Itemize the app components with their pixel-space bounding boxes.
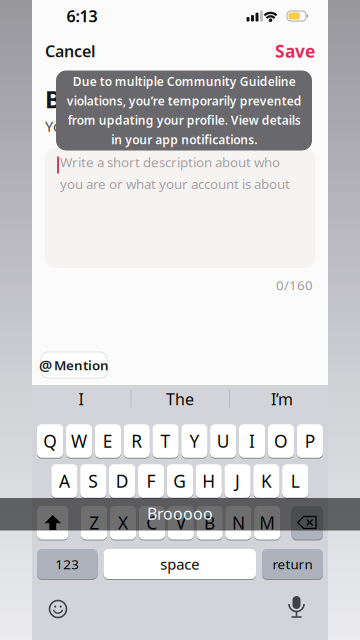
- staticText: C: [146, 511, 157, 534]
- staticText: 0/160: [276, 276, 313, 294]
- button[interactable]: V: [168, 505, 194, 540]
- button[interactable]: O: [268, 423, 294, 459]
- button[interactable]: W: [66, 423, 92, 459]
- button[interactable]: I’m: [237, 384, 327, 414]
- staticText: I: [249, 429, 255, 452]
- staticText: The: [166, 388, 194, 410]
- button[interactable]: S: [80, 463, 106, 499]
- staticText: W: [71, 429, 87, 452]
- button[interactable]: T: [152, 423, 179, 459]
- staticText: Mention: [54, 356, 109, 374]
- staticText: X: [118, 511, 128, 534]
- button[interactable]: B: [196, 505, 223, 540]
- button[interactable]: Save: [225, 39, 315, 62]
- staticText: F: [146, 469, 155, 492]
- staticText: K: [261, 469, 272, 492]
- button[interactable]: Emoji: [44, 595, 72, 623]
- button[interactable]: space: [103, 548, 256, 580]
- staticText: Due to multiple Community Guideline viol…: [66, 73, 301, 148]
- button[interactable]: The: [135, 384, 225, 414]
- staticText: Cancel: [45, 40, 96, 62]
- staticText: I: [78, 388, 83, 410]
- button[interactable]: return: [262, 548, 323, 580]
- staticText: T: [161, 429, 171, 452]
- staticText: A: [59, 469, 70, 492]
- staticText: B: [204, 511, 215, 534]
- staticText: D: [116, 469, 129, 492]
- staticText: L: [291, 469, 300, 492]
- button[interactable]: 123: [37, 548, 97, 580]
- staticText: G: [173, 469, 186, 492]
- staticText: E: [103, 429, 113, 452]
- button[interactable]: Dictation: [282, 593, 310, 621]
- staticText: Brooooo: [147, 503, 213, 524]
- button[interactable]: X: [110, 505, 136, 540]
- staticText: Write a short description about who you …: [60, 153, 290, 193]
- button[interactable]: J: [224, 463, 251, 499]
- staticText: P: [305, 429, 315, 452]
- staticText: space: [160, 554, 199, 574]
- button[interactable]: @: [41, 352, 107, 378]
- button[interactable]: H: [196, 463, 222, 499]
- staticText: R: [131, 429, 142, 452]
- staticText: 123: [55, 555, 79, 573]
- staticText: Z: [89, 511, 99, 534]
- button[interactable]: Delete: [291, 505, 323, 540]
- button[interactable]: G: [167, 463, 193, 499]
- button[interactable]: E: [95, 423, 121, 459]
- staticText: O: [274, 429, 288, 452]
- button[interactable]: I: [239, 423, 265, 459]
- button[interactable]: Cancel: [45, 40, 135, 62]
- staticText: U: [217, 429, 230, 452]
- staticText: S: [88, 469, 98, 492]
- staticText: Bio: [45, 83, 83, 115]
- staticText: V: [176, 511, 186, 534]
- button[interactable]: M: [254, 505, 280, 540]
- staticText: Y: [189, 429, 199, 452]
- button[interactable]: I: [36, 384, 126, 414]
- staticText: H: [202, 469, 215, 492]
- staticText: N: [232, 511, 245, 534]
- button[interactable]: R: [124, 423, 150, 459]
- staticText: J: [235, 469, 240, 492]
- staticText: return: [272, 555, 312, 573]
- button[interactable]: F: [138, 463, 164, 499]
- staticText: 6:13: [66, 5, 97, 27]
- button[interactable]: Y: [181, 423, 207, 459]
- button[interactable]: A: [51, 463, 78, 499]
- button[interactable]: K: [253, 463, 279, 499]
- button[interactable]: Z: [81, 505, 107, 540]
- staticText: I’m: [271, 388, 293, 410]
- button[interactable]: Shift: [37, 505, 68, 540]
- staticText: @: [39, 355, 52, 375]
- staticText: Save: [275, 39, 315, 62]
- button[interactable]: N: [225, 505, 251, 540]
- button[interactable]: D: [109, 463, 135, 499]
- button[interactable]: P: [297, 423, 323, 459]
- button[interactable]: L: [282, 463, 308, 499]
- button[interactable]: Q: [37, 423, 63, 459]
- staticText: Your bio will be visible on your profile: [45, 116, 305, 136]
- staticText: M: [259, 511, 275, 534]
- button[interactable]: C: [139, 505, 165, 540]
- button[interactable]: Bio: [45, 148, 315, 268]
- button[interactable]: U: [210, 423, 236, 459]
- staticText: Q: [43, 429, 57, 452]
